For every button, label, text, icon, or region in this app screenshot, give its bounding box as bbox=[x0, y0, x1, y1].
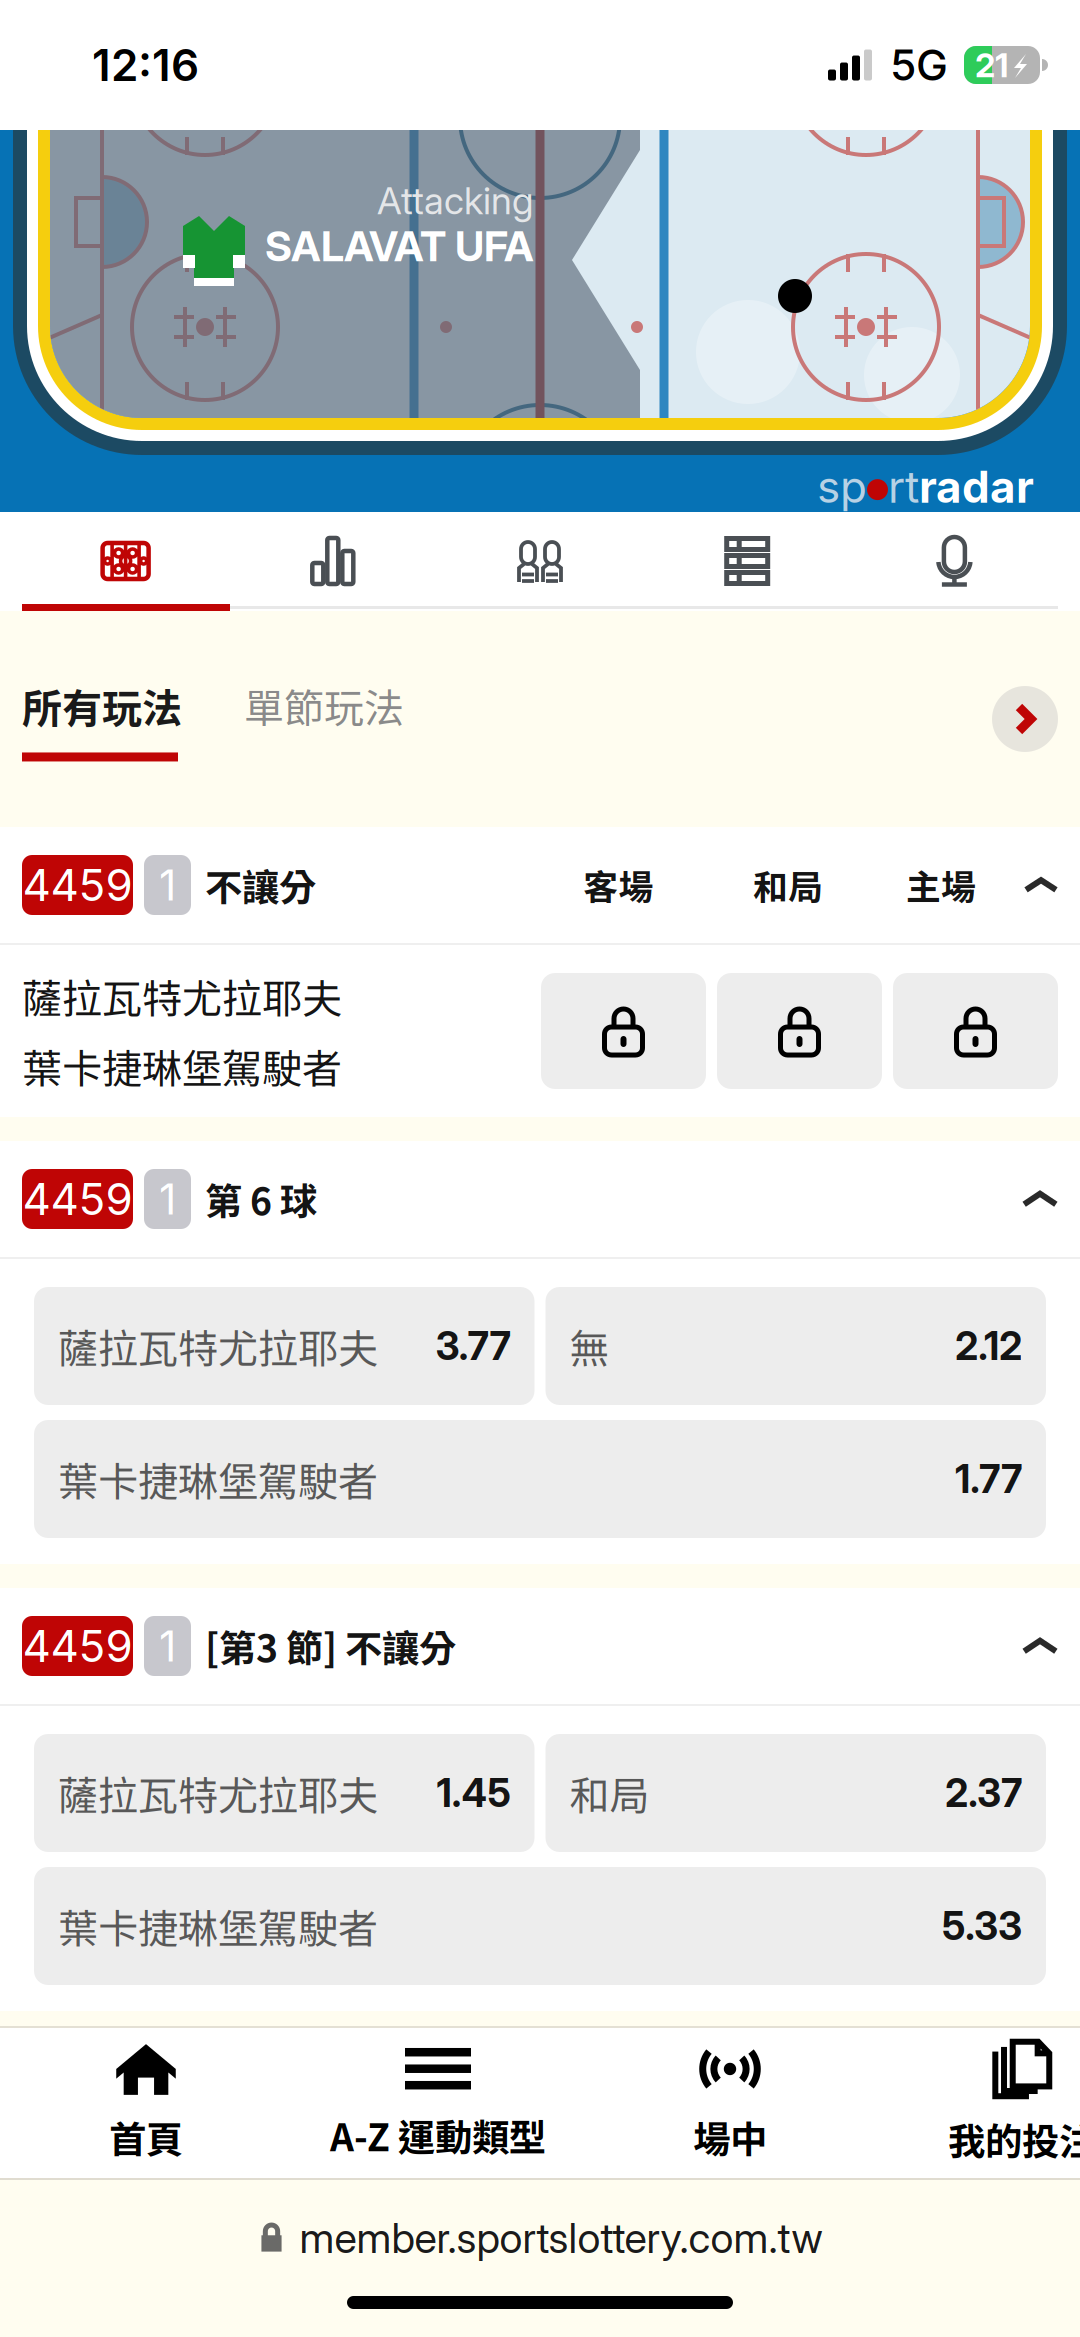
button[interactable]: 葉卡捷琳堡駕駛者 bbox=[34, 1420, 1046, 1538]
button[interactable]: Match summary bbox=[644, 518, 851, 604]
button[interactable]: 薩拉瓦特尤拉耶夫 bbox=[34, 1734, 534, 1852]
staticText: 4459 bbox=[22, 1172, 132, 1226]
button[interactable]: 薩拉瓦特尤拉耶夫 bbox=[34, 1287, 534, 1405]
button[interactable]: 無 bbox=[545, 1287, 1046, 1405]
staticText: 2.37 bbox=[945, 1770, 1022, 1816]
staticText: 第 6 球 bbox=[205, 1172, 317, 1226]
staticText: member.sportslottery.com.tw bbox=[299, 2213, 822, 2263]
staticText: A-Z 運動類型 bbox=[330, 2108, 546, 2162]
button[interactable]: A-Z 運動類型 bbox=[292, 2028, 584, 2178]
staticText: 1 bbox=[159, 1173, 176, 1225]
staticText: 21 bbox=[975, 45, 1009, 85]
staticText: rt bbox=[888, 460, 919, 513]
staticText: SALAVAT UFA bbox=[265, 221, 534, 271]
staticText: 1.77 bbox=[955, 1456, 1022, 1502]
button[interactable]: 首頁 bbox=[0, 2028, 292, 2178]
staticText: 葉卡捷琳堡駕駛者 bbox=[58, 1897, 378, 1955]
button[interactable]: 葉卡捷琳堡駕駛者 bbox=[34, 1867, 1046, 1985]
button[interactable]: Statistics bbox=[229, 518, 436, 604]
button[interactable]: Draw — locked bbox=[717, 973, 882, 1089]
staticText: 薩拉瓦特尤拉耶夫 bbox=[58, 1317, 378, 1375]
staticText: 主場 bbox=[906, 860, 976, 910]
button[interactable]: 4459 bbox=[0, 1141, 1080, 1257]
staticText: 4459 bbox=[22, 858, 132, 912]
staticText: 所有玩法 bbox=[22, 676, 182, 734]
button[interactable]: Lineups bbox=[436, 518, 644, 604]
staticText: 和局 bbox=[569, 1764, 649, 1822]
staticText: 單節玩法 bbox=[244, 676, 404, 734]
staticText: 我的投注 bbox=[948, 2112, 1080, 2166]
staticText: 12:16 bbox=[92, 38, 199, 92]
staticText: radar bbox=[919, 460, 1034, 513]
staticText: 2.12 bbox=[955, 1323, 1022, 1369]
staticText: 客場 bbox=[583, 860, 653, 910]
button[interactable]: 單節玩法 bbox=[244, 676, 404, 761]
button[interactable]: 我的投注 bbox=[876, 2028, 1080, 2178]
staticText: sp bbox=[817, 460, 867, 513]
staticText: 1 bbox=[159, 1620, 176, 1672]
button[interactable]: Away — locked bbox=[541, 973, 706, 1089]
staticText: Attacking bbox=[377, 178, 534, 223]
staticText: 4459 bbox=[22, 1619, 132, 1673]
staticText: 5.33 bbox=[942, 1903, 1022, 1949]
staticText: 首頁 bbox=[109, 2110, 183, 2164]
staticText: 場中 bbox=[693, 2110, 767, 2164]
staticText: 和局 bbox=[753, 860, 823, 910]
button[interactable]: Match tracker bbox=[22, 518, 229, 604]
staticText: 葉卡捷琳堡駕駛者 bbox=[22, 1037, 342, 1095]
staticText: 薩拉瓦特尤拉耶夫 bbox=[58, 1764, 378, 1822]
staticText: 葉卡捷琳堡駕駛者 bbox=[58, 1450, 378, 1508]
button[interactable]: More markets bbox=[992, 686, 1058, 752]
staticText: [第3 節] 不讓分 bbox=[205, 1619, 456, 1673]
staticText: 1.45 bbox=[436, 1770, 510, 1816]
staticText: 3.77 bbox=[435, 1323, 510, 1369]
staticText: 1 bbox=[159, 859, 176, 911]
staticText: 不讓分 bbox=[205, 858, 316, 912]
staticText: 無 bbox=[569, 1317, 609, 1375]
button[interactable]: Commentary bbox=[851, 518, 1058, 604]
button[interactable]: 所有玩法 bbox=[22, 676, 182, 761]
staticText: 5G bbox=[890, 39, 948, 91]
staticText: 薩拉瓦特尤拉耶夫 bbox=[22, 967, 342, 1025]
button[interactable]: 場中 bbox=[584, 2028, 876, 2178]
button[interactable]: 和局 bbox=[545, 1734, 1046, 1852]
button[interactable]: Home — locked bbox=[893, 973, 1058, 1089]
button[interactable]: 4459 bbox=[0, 1588, 1080, 1704]
